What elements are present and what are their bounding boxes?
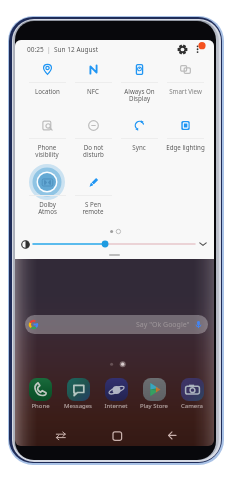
button[interactable]: Do not disturb xyxy=(70,114,116,156)
staticText: Phone xyxy=(31,402,50,410)
staticText: Do not disturb xyxy=(83,143,104,159)
staticText: Phone visibility xyxy=(35,143,59,159)
button[interactable]: Phone visibility xyxy=(24,114,70,156)
staticText: Play Store xyxy=(140,402,168,410)
button[interactable]: Sync xyxy=(116,114,162,156)
staticText: Messages xyxy=(64,402,92,410)
button[interactable]: Dolby Atmos xyxy=(24,171,70,213)
button[interactable]: Play Store xyxy=(137,378,171,410)
staticText: Edge lighting xyxy=(166,143,205,151)
staticText: Always On Display xyxy=(124,87,155,103)
staticText: Sync xyxy=(132,143,146,151)
staticText: S Pen remote xyxy=(82,200,104,216)
button[interactable]: Expand xyxy=(198,239,208,249)
staticText: 00:25 xyxy=(27,45,44,54)
button[interactable]: Messages xyxy=(61,378,95,410)
button[interactable]: Say "Ok Google" xyxy=(25,315,208,334)
staticText: | xyxy=(47,45,51,54)
staticText: NFC xyxy=(87,87,99,95)
button[interactable]: Location xyxy=(24,58,70,100)
staticText: Camera xyxy=(181,402,203,410)
button[interactable]: Smart View xyxy=(162,58,208,100)
button[interactable]: Always On Display xyxy=(116,58,162,100)
staticText: Sun 12 August xyxy=(54,45,99,54)
button[interactable]: Edge lighting xyxy=(162,114,208,156)
staticText: Location xyxy=(35,87,60,95)
button[interactable]: Settings xyxy=(175,42,189,56)
button[interactable]: Phone xyxy=(23,378,57,410)
button[interactable]: NFC xyxy=(70,58,116,100)
button[interactable]: S Pen remote xyxy=(70,171,116,213)
button[interactable]: More options xyxy=(192,42,206,56)
staticText: Internet xyxy=(104,402,128,410)
staticText: Say "Ok Google" xyxy=(136,320,190,330)
button[interactable]: Camera xyxy=(175,378,209,410)
button[interactable]: Internet xyxy=(99,378,133,410)
staticText: Smart View xyxy=(169,87,202,95)
staticText: Dolby Atmos xyxy=(38,200,57,216)
